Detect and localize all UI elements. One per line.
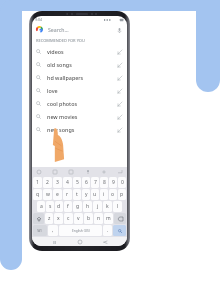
- staticText: ,: [52, 227, 54, 234]
- staticText: v: [77, 215, 80, 222]
- button[interactable]: r: [63, 189, 72, 200]
- button[interactable]: Home: [76, 238, 84, 246]
- button[interactable]: Back: [101, 238, 109, 246]
- staticText: 2: [46, 179, 49, 186]
- button[interactable]: 5: [73, 177, 81, 188]
- staticText: e: [56, 191, 59, 198]
- staticText: cool photos: [47, 100, 78, 107]
- button[interactable]: Keyboard tool 5: [101, 169, 107, 175]
- button[interactable]: n: [94, 213, 103, 224]
- button[interactable]: new songs: [32, 123, 127, 136]
- button[interactable]: b: [84, 213, 93, 224]
- button[interactable]: q: [33, 189, 42, 200]
- staticText: n: [97, 215, 101, 222]
- button[interactable]: m: [104, 213, 113, 224]
- button[interactable]: !#1: [33, 225, 47, 236]
- button[interactable]: 3: [53, 177, 62, 188]
- button[interactable]: cool photos: [32, 97, 127, 110]
- staticText: 8: [103, 179, 106, 186]
- button[interactable]: i: [100, 189, 108, 200]
- button[interactable]: hd wallpapers: [32, 71, 127, 84]
- staticText: 5: [76, 179, 79, 186]
- button[interactable]: o: [109, 189, 117, 200]
- button[interactable]: t: [73, 189, 81, 200]
- button[interactable]: 2: [43, 177, 52, 188]
- staticText: g: [76, 203, 80, 210]
- staticText: h: [86, 203, 90, 210]
- button[interactable]: Search...: [32, 23, 127, 36]
- button[interactable]: k: [103, 201, 112, 212]
- button[interactable]: v: [74, 213, 83, 224]
- staticText: k: [106, 203, 109, 210]
- button[interactable]: .: [103, 225, 112, 236]
- button[interactable]: l: [113, 201, 122, 212]
- staticText: 3: [56, 179, 59, 186]
- staticText: 1: [36, 179, 39, 186]
- staticText: .: [107, 227, 109, 234]
- staticText: English (US): [72, 229, 90, 233]
- staticText: z: [48, 215, 51, 222]
- button[interactable]: Insert new movies: [116, 113, 123, 120]
- button[interactable]: ,: [48, 225, 58, 236]
- button[interactable]: 7: [91, 177, 99, 188]
- staticText: t: [76, 191, 78, 198]
- button[interactable]: Insert love: [116, 87, 123, 94]
- button[interactable]: f: [64, 201, 72, 212]
- button[interactable]: y: [82, 189, 90, 200]
- button[interactable]: love: [32, 84, 127, 97]
- button[interactable]: 4: [63, 177, 72, 188]
- button[interactable]: backspace: [114, 213, 126, 224]
- staticText: x: [57, 215, 60, 222]
- button[interactable]: 0: [118, 177, 126, 188]
- staticText: 0: [121, 179, 124, 186]
- staticText: y: [85, 191, 88, 198]
- button[interactable]: 6: [82, 177, 90, 188]
- staticText: q: [36, 191, 40, 198]
- button[interactable]: old songs: [32, 58, 127, 71]
- button[interactable]: Insert hd wallpapers: [116, 74, 123, 81]
- button[interactable]: 1: [33, 177, 42, 188]
- button[interactable]: Insert videos: [116, 48, 123, 55]
- button[interactable]: Recents: [50, 238, 58, 246]
- staticText: hd wallpapers: [47, 74, 84, 81]
- button[interactable]: Keyboard tool 2: [52, 169, 58, 175]
- button[interactable]: shift: [33, 213, 44, 224]
- button[interactable]: x: [54, 213, 63, 224]
- staticText: o: [111, 191, 115, 198]
- button[interactable]: 9: [109, 177, 117, 188]
- staticText: old songs: [47, 61, 72, 68]
- button[interactable]: Insert old songs: [116, 61, 123, 68]
- button[interactable]: g: [73, 201, 82, 212]
- button[interactable]: s: [46, 201, 54, 212]
- button[interactable]: Insert cool photos: [116, 100, 123, 107]
- button[interactable]: j: [93, 201, 102, 212]
- staticText: a: [40, 203, 43, 210]
- button[interactable]: e: [53, 189, 62, 200]
- button[interactable]: c: [64, 213, 73, 224]
- button[interactable]: Insert new songs: [116, 126, 123, 133]
- staticText: c: [67, 215, 70, 222]
- staticText: 9: [112, 179, 115, 186]
- button[interactable]: Search: [113, 225, 126, 236]
- button[interactable]: English (US): [59, 225, 102, 236]
- staticText: !#1: [37, 228, 43, 233]
- staticText: b: [87, 215, 91, 222]
- staticText: RECOMMENDED FOR YOU: [36, 38, 85, 43]
- button[interactable]: z: [45, 213, 53, 224]
- button[interactable]: d: [55, 201, 63, 212]
- button[interactable]: 8: [100, 177, 108, 188]
- staticText: 4: [66, 179, 69, 186]
- button[interactable]: h: [83, 201, 92, 212]
- button[interactable]: Voice search: [115, 26, 123, 34]
- button[interactable]: Keyboard tool 6: [117, 169, 123, 175]
- button[interactable]: w: [43, 189, 52, 200]
- button[interactable]: u: [91, 189, 99, 200]
- button[interactable]: Keyboard tool 4: [85, 169, 91, 175]
- staticText: i: [103, 191, 105, 198]
- button[interactable]: Keyboard tool 3: [68, 169, 74, 175]
- button[interactable]: videos: [32, 45, 127, 58]
- button[interactable]: Keyboard tool 1: [36, 169, 42, 175]
- button[interactable]: a: [37, 201, 45, 212]
- button[interactable]: new movies: [32, 110, 127, 123]
- button[interactable]: p: [118, 189, 126, 200]
